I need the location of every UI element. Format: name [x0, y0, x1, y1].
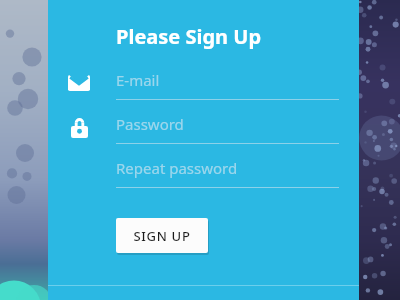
staticText: Please Sign Up: [116, 23, 262, 50]
staticText: E-mail: [116, 70, 160, 90]
staticText: Password: [116, 114, 184, 134]
button[interactable]: SIGN UP: [116, 218, 208, 253]
button[interactable]: Password: [62, 114, 96, 140]
button[interactable]: E-mail: [62, 70, 96, 96]
button[interactable]: E-mail: [116, 66, 339, 100]
button[interactable]: Repeat password: [116, 154, 339, 188]
staticText: SIGN UP: [133, 227, 191, 245]
staticText: Repeat password: [116, 158, 238, 178]
button[interactable]: Password: [116, 110, 339, 144]
